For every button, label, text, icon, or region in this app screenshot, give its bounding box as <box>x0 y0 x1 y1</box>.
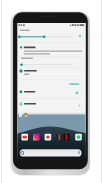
button[interactable]: WhatsApp <box>75 133 83 141</box>
button[interactable]: Media volume <box>17 86 86 98</box>
button[interactable]: Advanced <box>66 80 85 88</box>
button[interactable]: Vibration <box>17 67 86 79</box>
button[interactable]: Netflix <box>63 133 71 141</box>
button[interactable]: Do not disturb <box>17 42 86 57</box>
button[interactable]: View configuration <box>17 98 86 114</box>
button[interactable]: Camera <box>44 133 52 141</box>
button[interactable]: YouTube <box>21 133 29 141</box>
button[interactable]: Photos <box>56 133 64 141</box>
button[interactable]: Instagram <box>33 133 41 141</box>
button[interactable]: Search <box>20 149 82 157</box>
